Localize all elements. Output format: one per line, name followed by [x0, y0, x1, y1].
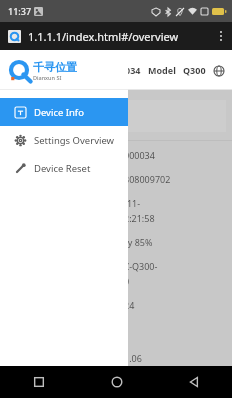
- button[interactable]: Home: [78, 366, 155, 398]
- staticText: 2:21:58: [124, 212, 155, 224]
- button[interactable]: Settings Overview: [0, 126, 128, 154]
- button[interactable]: More options: [210, 22, 232, 50]
- staticText: ry 85%: [124, 236, 153, 248]
- staticText: 0: [124, 275, 130, 287]
- staticText: 034: [125, 64, 141, 76]
- staticText: Settings Overview: [34, 134, 115, 147]
- button[interactable]: Device Reset: [0, 154, 128, 182]
- staticText: 000034: [124, 149, 155, 161]
- button[interactable]: Recent apps: [0, 366, 78, 398]
- staticText: 1.1.1.1/index.html#/overview: [28, 29, 179, 44]
- staticText: -11-: [124, 197, 141, 209]
- staticText: 308009702: [124, 173, 171, 185]
- staticText: 1.06: [124, 352, 142, 364]
- staticText: Dianxun SI: [33, 74, 62, 81]
- staticText: Device Reset: [34, 162, 91, 175]
- staticText: Device Info: [34, 106, 84, 119]
- staticText: Q300: [183, 64, 206, 76]
- staticText: Z-Q300-: [124, 260, 158, 272]
- staticText: 11:37: [8, 5, 32, 17]
- staticText: 24: [124, 299, 135, 311]
- staticText: 千寻位置: [33, 60, 77, 74]
- button[interactable]: Back: [155, 366, 232, 398]
- button[interactable]: Language: [213, 65, 224, 76]
- button[interactable]: Device Info: [0, 98, 128, 126]
- staticText: Model: [148, 64, 176, 76]
